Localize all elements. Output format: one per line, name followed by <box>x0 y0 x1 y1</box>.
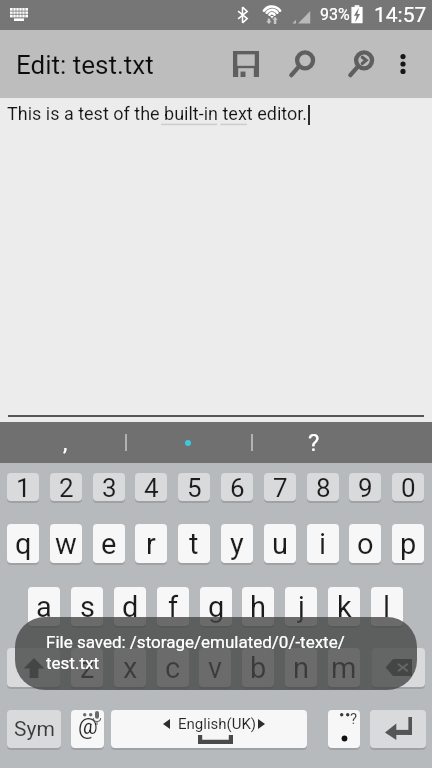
staticText: a <box>36 590 52 624</box>
button[interactable]: c <box>157 648 189 687</box>
staticText: c <box>165 651 181 685</box>
staticText: n <box>293 651 310 685</box>
button[interactable]: , <box>55 429 75 457</box>
staticText: u <box>272 527 288 561</box>
staticText: 7 <box>273 473 288 501</box>
button[interactable]: Voice input <box>71 710 104 748</box>
staticText: 3 <box>102 473 117 501</box>
staticText: p <box>400 527 417 561</box>
staticText: 1 <box>16 473 31 501</box>
staticText: j <box>298 590 305 624</box>
staticText: File saved: /storage/emulated/0/-texte/ … <box>46 632 345 674</box>
button[interactable]: u <box>264 524 296 563</box>
button[interactable]: 8 <box>307 473 339 501</box>
staticText: g <box>208 590 225 624</box>
button[interactable]: x <box>114 648 146 687</box>
staticText: w <box>55 527 77 561</box>
button[interactable]: r <box>135 524 167 563</box>
staticText: Edit: test.txt <box>16 50 154 80</box>
staticText: 93% <box>320 5 350 24</box>
button[interactable]: s <box>71 587 103 626</box>
button[interactable]: Period <box>328 710 360 748</box>
staticText: r <box>146 527 156 561</box>
button[interactable]: d <box>114 587 146 626</box>
button[interactable]: Save <box>222 30 270 98</box>
button[interactable]: n <box>285 648 317 687</box>
button[interactable]: 5 <box>178 473 210 501</box>
staticText: 9 <box>358 473 373 501</box>
button[interactable]: ? <box>303 429 325 457</box>
button[interactable]: 4 <box>135 473 167 501</box>
staticText: English(UK) <box>178 715 257 733</box>
staticText: 0 <box>401 473 416 501</box>
staticText: 14:57 <box>374 3 427 28</box>
staticText: i <box>319 527 327 561</box>
staticText: t <box>189 527 199 561</box>
staticText: l <box>383 590 391 624</box>
button[interactable]: 3 <box>93 473 125 501</box>
staticText: h <box>250 590 266 624</box>
staticText: z <box>80 651 95 685</box>
button[interactable]: v <box>199 648 231 687</box>
button[interactable]: 7 <box>264 473 296 501</box>
staticText: 5 <box>187 473 202 501</box>
button[interactable]: 2 <box>50 473 82 501</box>
staticText: b <box>250 651 267 685</box>
staticText: 6 <box>230 473 245 501</box>
button[interactable]: z <box>71 648 103 687</box>
button[interactable]: Space <box>111 710 307 748</box>
staticText: , <box>63 430 68 456</box>
staticText: d <box>122 590 139 624</box>
staticText: @ <box>78 714 98 740</box>
staticText: x <box>123 651 138 685</box>
button[interactable]: q <box>7 524 39 563</box>
button[interactable]: o <box>349 524 381 563</box>
button[interactable]: y <box>221 524 253 563</box>
button[interactable]: a <box>28 587 60 626</box>
button[interactable]: h <box>242 587 274 626</box>
button[interactable]: 9 <box>349 473 381 501</box>
staticText: m <box>331 651 357 685</box>
button[interactable]: More options <box>379 30 427 98</box>
staticText: e <box>101 527 117 561</box>
staticText: q <box>15 527 32 561</box>
staticText: s <box>80 590 95 624</box>
button[interactable]: i <box>307 524 339 563</box>
staticText: 8 <box>316 473 331 501</box>
staticText: y <box>230 527 244 561</box>
button[interactable]: b <box>242 648 274 687</box>
button[interactable] <box>165 429 211 457</box>
button[interactable]: j <box>285 587 317 626</box>
staticText: f <box>168 590 179 624</box>
staticText: Sym <box>14 717 55 742</box>
button[interactable]: l <box>371 587 403 626</box>
button[interactable]: t <box>178 524 210 563</box>
staticText: 4 <box>144 473 159 501</box>
button[interactable]: 1 <box>7 473 39 501</box>
button[interactable]: w <box>50 524 82 563</box>
staticText: 2 <box>59 473 74 501</box>
button[interactable]: Search <box>278 30 326 98</box>
button[interactable]: k <box>328 587 360 626</box>
staticText: k <box>337 590 352 624</box>
staticText: ? <box>350 710 358 728</box>
button[interactable]: Enter <box>370 710 426 748</box>
button[interactable]: Sym <box>7 710 61 748</box>
button[interactable]: p <box>392 524 424 563</box>
staticText: v <box>208 651 223 685</box>
button[interactable]: e <box>93 524 125 563</box>
button[interactable]: Backspace <box>372 648 425 687</box>
button[interactable]: Find next <box>337 30 385 98</box>
button[interactable]: Shift <box>7 648 60 687</box>
button[interactable]: f <box>157 587 189 626</box>
button[interactable]: 6 <box>221 473 253 501</box>
staticText: This is a test of the built-in text edit… <box>7 103 308 124</box>
staticText: ? <box>308 429 320 457</box>
staticText: o <box>357 527 374 561</box>
button[interactable]: g <box>200 587 232 626</box>
button[interactable]: m <box>328 648 360 687</box>
button[interactable]: 0 <box>392 473 424 501</box>
